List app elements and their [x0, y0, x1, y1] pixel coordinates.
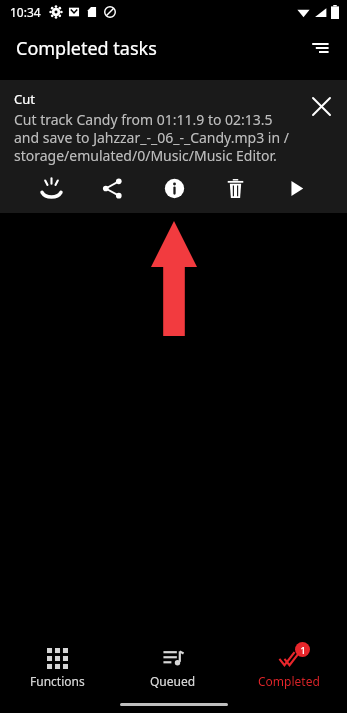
staticText: 1: [300, 644, 306, 656]
staticText: Completed: [258, 673, 320, 689]
staticText: Cut track Candy from 01:11.9 to 02:13.5 …: [14, 110, 295, 165]
button[interactable]: 1: [231, 648, 347, 689]
button[interactable]: Set as ringtone: [34, 171, 68, 205]
button[interactable]: Play: [279, 171, 313, 205]
staticText: Functions: [30, 673, 85, 689]
button[interactable]: Info: [157, 171, 191, 205]
staticText: 10:34: [10, 4, 41, 20]
staticText: Cut: [14, 90, 35, 108]
button[interactable]: Functions: [0, 648, 115, 689]
button[interactable]: Dismiss: [299, 84, 343, 128]
staticText: Queued: [150, 673, 196, 689]
staticText: Completed tasks: [16, 36, 157, 61]
button[interactable]: Cut: [0, 80, 347, 213]
button[interactable]: Delete: [218, 171, 252, 205]
button[interactable]: Queued: [115, 648, 231, 689]
button[interactable]: Share: [95, 171, 129, 205]
button[interactable]: Sort: [297, 26, 341, 70]
